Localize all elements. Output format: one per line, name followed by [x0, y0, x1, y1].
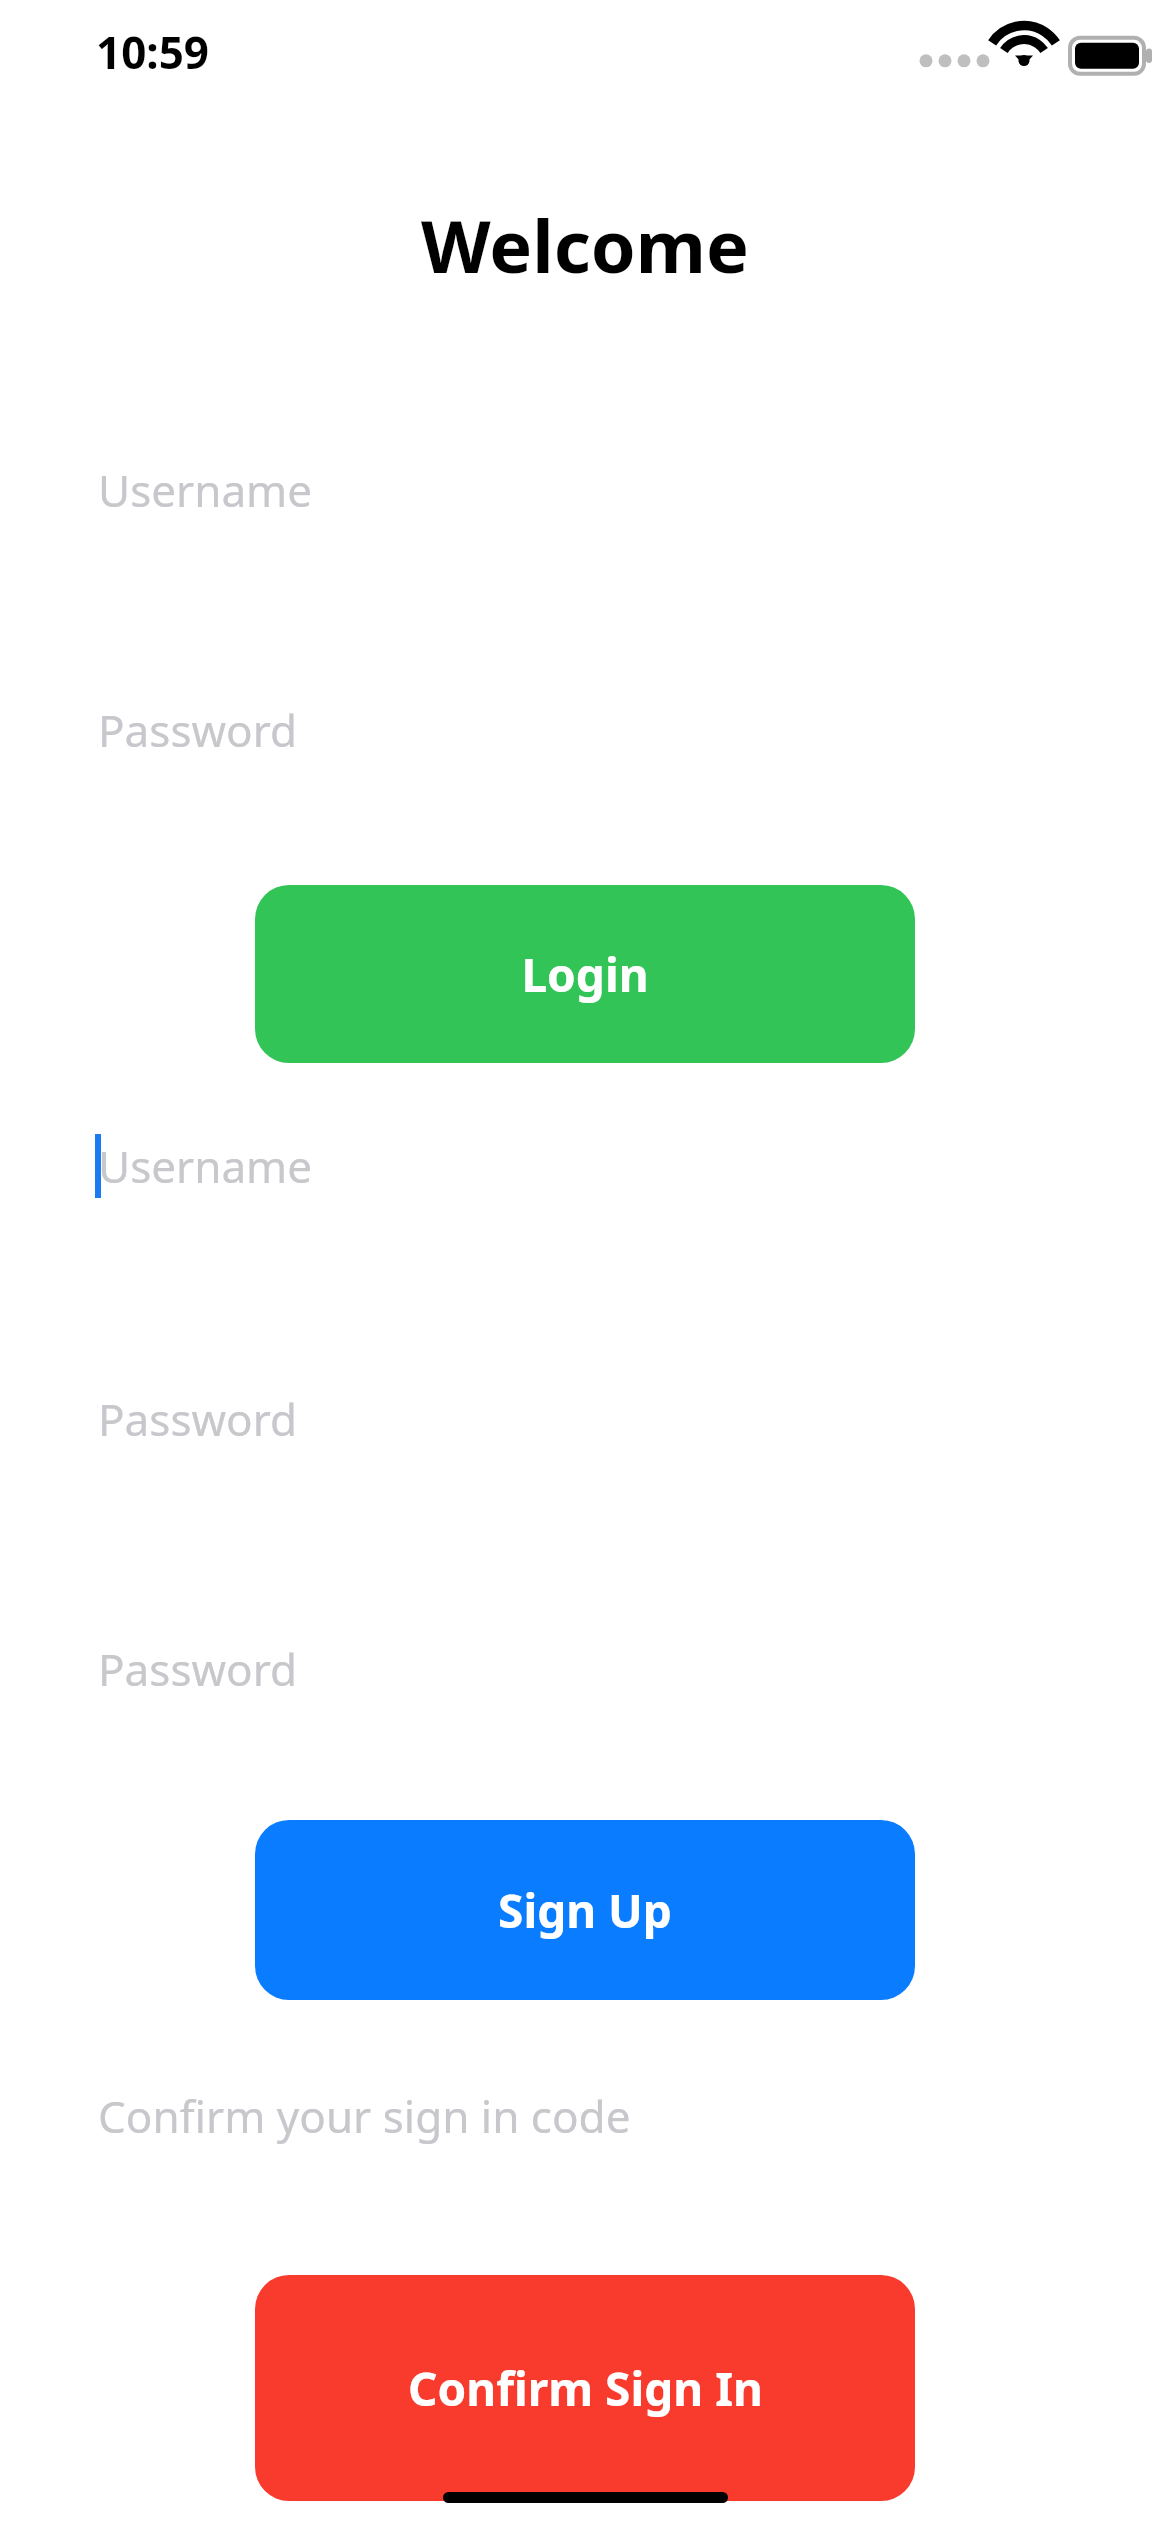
staticText: Password	[98, 1639, 298, 1699]
button[interactable]: Confirm Sign In	[255, 2275, 915, 2501]
button[interactable]: Password	[0, 1381, 1170, 1465]
staticText: 10:59	[96, 22, 210, 82]
staticText: Welcome	[0, 196, 1170, 294]
staticText: Password	[98, 1389, 298, 1449]
button[interactable]: Sign Up	[255, 1820, 915, 2000]
staticText: Confirm Sign In	[408, 2357, 763, 2420]
button[interactable]: Username	[0, 1128, 1170, 1212]
staticText: Username	[98, 1136, 313, 1196]
staticText: Confirm your sign in code	[98, 2086, 631, 2146]
staticText: Password	[98, 700, 298, 760]
button[interactable]: Username	[0, 452, 1170, 536]
button[interactable]: Login	[255, 885, 915, 1063]
button[interactable]: Password	[0, 1631, 1170, 1715]
staticText: Login	[521, 943, 649, 1006]
staticText: Sign Up	[498, 1879, 672, 1942]
button[interactable]: Confirm your sign in code	[0, 2078, 1170, 2162]
button[interactable]: Password	[0, 692, 1170, 776]
staticText: Username	[98, 460, 313, 520]
